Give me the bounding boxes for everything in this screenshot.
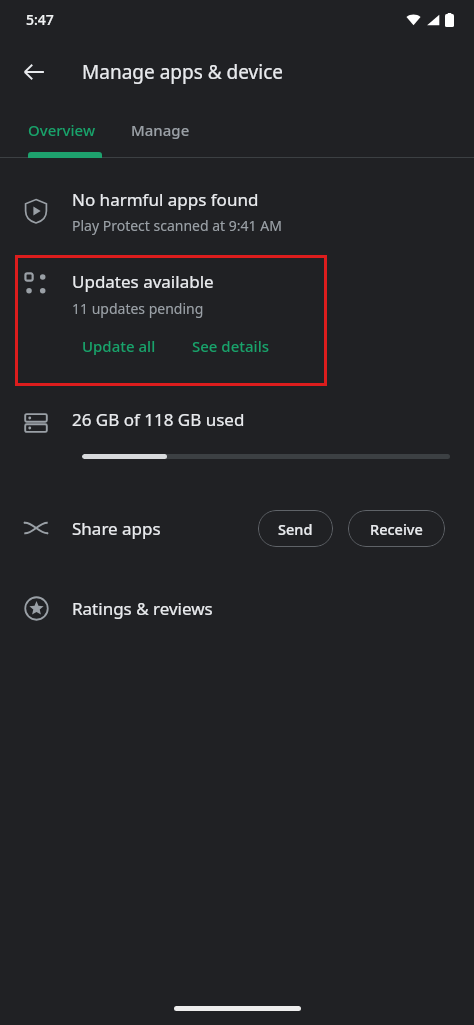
staticText: No harmful apps found [72,188,259,211]
staticText: Send [278,519,313,539]
button[interactable]: Ratings & reviews [0,569,474,647]
staticText: 11 updates pending [72,299,204,318]
button[interactable]: Share apps [0,487,474,569]
staticText: Receive [370,519,423,539]
staticText: 5:47 [26,10,54,29]
button[interactable]: Receive [348,510,445,547]
staticText: Ratings & reviews [72,597,213,620]
staticText: See details [192,336,269,356]
staticText: Manage [131,120,190,140]
button[interactable]: See details [180,328,281,364]
staticText: Share apps [72,517,161,540]
staticText: Play Protect scanned at 9:41 AM [72,216,282,235]
button[interactable]: Manage [113,106,208,158]
button[interactable]: No harmful apps found [0,172,474,250]
button[interactable]: 26 GB of 118 GB used [0,392,474,487]
button[interactable]: Update all [70,328,168,364]
staticText: 26 GB of 118 GB used [72,408,245,431]
button[interactable]: Send [258,510,333,547]
button[interactable]: Back [10,48,58,96]
staticText: Updates available [72,270,214,293]
staticText: Manage apps & device [82,59,283,85]
staticText: Update all [82,336,156,356]
button[interactable]: Updates available [0,250,474,364]
staticText: Overview [28,120,95,140]
button[interactable]: Overview [10,106,113,158]
